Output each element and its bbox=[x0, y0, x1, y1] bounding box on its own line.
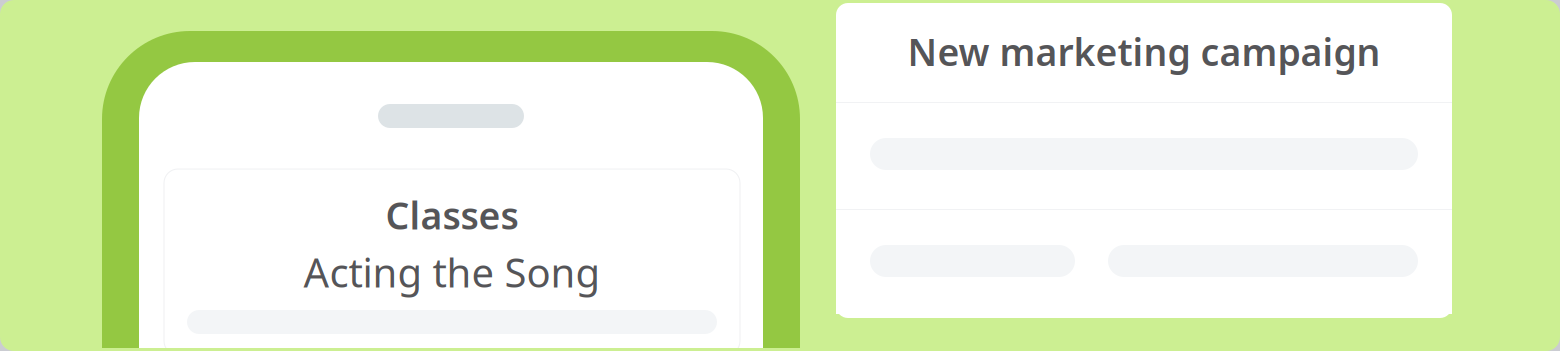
staticText: Classes bbox=[385, 190, 518, 240]
staticText: Acting the Song bbox=[303, 245, 600, 298]
button[interactable]: Classes bbox=[164, 169, 740, 351]
button[interactable]: New marketing campaign bbox=[836, 3, 1452, 100]
staticText: New marketing campaign bbox=[907, 27, 1380, 76]
button[interactable]: Campaign detail row bbox=[836, 103, 1452, 209]
button[interactable]: Campaign options row bbox=[836, 210, 1452, 314]
